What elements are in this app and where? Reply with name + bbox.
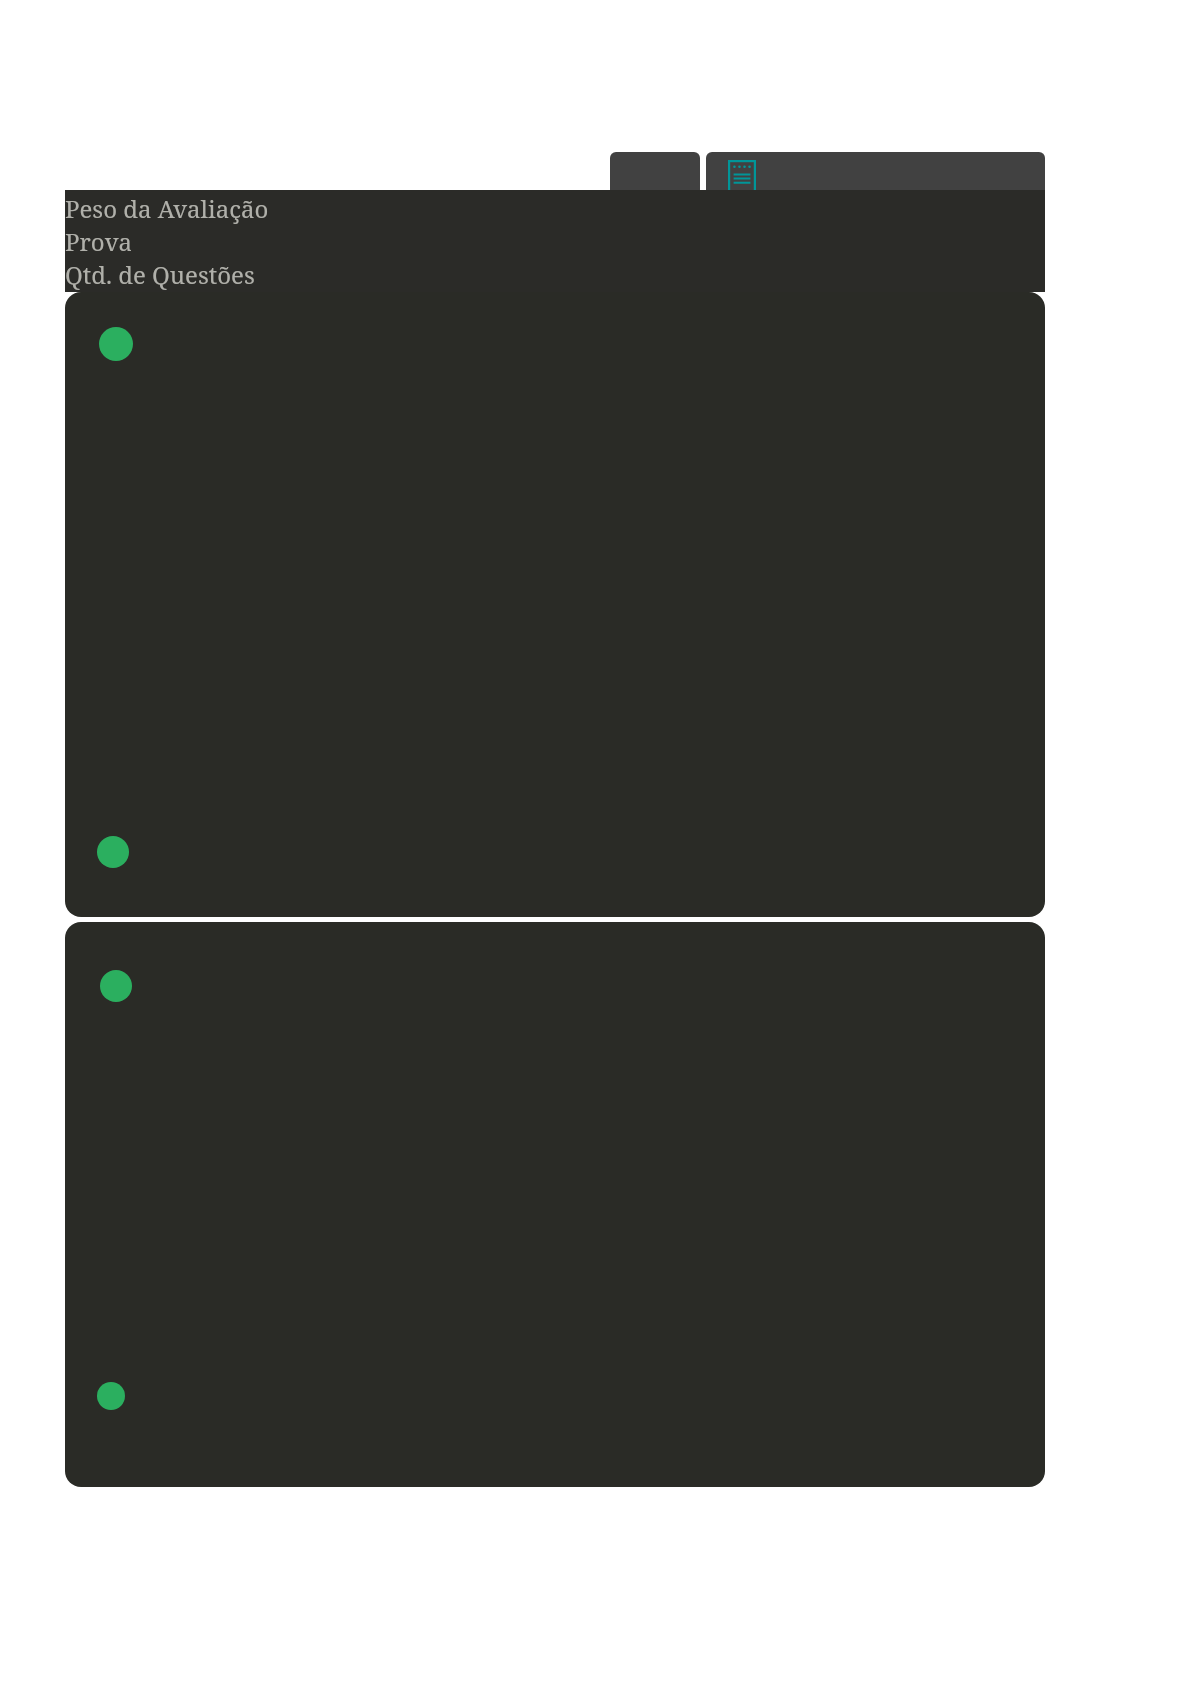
button[interactable]: Notas (706, 152, 1045, 203)
staticText: Prova (65, 225, 133, 258)
staticText: Qtd. de Questões (65, 258, 255, 291)
other: Notas (728, 160, 756, 196)
button[interactable] (65, 292, 1045, 917)
button[interactable]: Voltar (610, 152, 700, 203)
staticText: Peso da Avaliação (65, 192, 269, 225)
staticText: Nota (65, 291, 120, 294)
button[interactable] (65, 922, 1045, 1487)
